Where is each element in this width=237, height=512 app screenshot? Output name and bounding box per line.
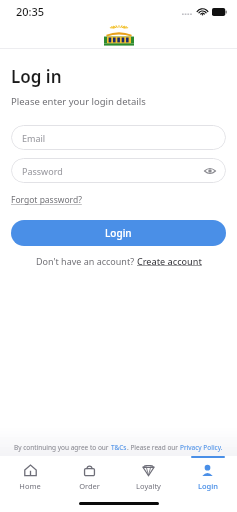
staticText: Order [79, 481, 100, 491]
button[interactable]: Forgot password? [11, 194, 82, 206]
staticText: By continuing you agree to our [14, 443, 111, 452]
button[interactable]: Password [11, 158, 226, 183]
staticText: . Please read our [127, 443, 180, 452]
staticText: Email [22, 132, 46, 144]
staticText: T&Cs [111, 443, 127, 452]
button[interactable]: Order [60, 456, 119, 494]
button[interactable]: Show password [203, 164, 217, 178]
button[interactable]: Login [11, 220, 226, 246]
staticText: Login [198, 481, 218, 491]
staticText: Password [22, 165, 63, 177]
button[interactable]: Login [178, 456, 237, 494]
button[interactable]: Create account [137, 255, 202, 267]
button[interactable]: T&Cs [111, 443, 127, 452]
button[interactable]: Email [11, 125, 226, 150]
staticText: Loyalty [136, 481, 161, 491]
staticText: Forgot password? [11, 194, 82, 206]
button[interactable]: Privacy Policy. [180, 443, 223, 452]
button[interactable]: Loyalty [119, 456, 178, 494]
staticText: Create account [137, 255, 202, 267]
staticText: Home [19, 481, 41, 491]
button[interactable]: Home [0, 456, 60, 494]
staticText: 20:35 [16, 4, 45, 19]
staticText: Log in [11, 65, 62, 88]
staticText: Don't have an account? [36, 255, 137, 267]
staticText: Please enter your login details [11, 95, 146, 108]
staticText: Privacy Policy. [180, 443, 223, 452]
staticText: Login [105, 226, 132, 240]
